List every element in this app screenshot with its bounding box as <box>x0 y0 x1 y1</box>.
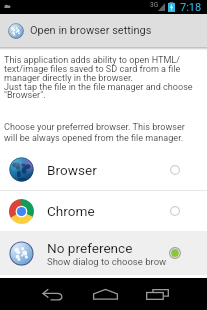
staticText: will be always opened from the file mana… <box>4 133 184 144</box>
button[interactable]: Home <box>84 278 126 310</box>
button[interactable]: Chrome <box>0 191 207 231</box>
staticText: Open in browser settings <box>30 24 152 37</box>
staticText: 7:18 <box>180 1 202 14</box>
staticText: This application adds ability to open HT… <box>4 55 181 66</box>
staticText: Just tap the file in the file manager an… <box>4 82 193 93</box>
staticText: Choose your preferred browser. This brow… <box>4 122 185 133</box>
button[interactable]: No preference <box>0 231 207 275</box>
staticText: "Browser". <box>4 90 46 101</box>
staticText: No preference <box>47 240 133 256</box>
button[interactable]: Browser <box>0 149 207 190</box>
staticText: Browser <box>47 162 97 178</box>
button[interactable]: Back <box>31 278 73 310</box>
staticText: Show dialog to choose browser <box>47 256 167 267</box>
staticText: manager directly in the browser. <box>4 73 133 84</box>
staticText: 3G <box>150 1 159 9</box>
staticText: text/image files saved to SD card from a… <box>4 64 181 75</box>
button[interactable]: Recent apps <box>136 278 178 310</box>
staticText: Chrome <box>47 203 95 219</box>
